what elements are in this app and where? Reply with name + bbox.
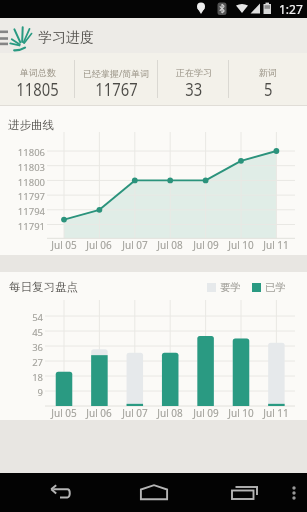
staticText: 11803 <box>17 161 45 174</box>
staticText: Jul 08 <box>155 238 185 252</box>
button[interactable]: 正在学习 <box>158 53 229 105</box>
staticText: 11767 <box>95 76 138 101</box>
staticText: Jul 08 <box>155 406 185 420</box>
staticText: Jul 05 <box>49 238 79 252</box>
staticText: 45 <box>25 326 43 339</box>
button[interactable] <box>126 473 182 512</box>
staticText: 54 <box>25 311 43 324</box>
staticText: 要学 <box>220 281 241 294</box>
staticText: 正在学习 <box>176 67 212 78</box>
staticText: Jul 09 <box>191 238 221 252</box>
staticText: Jul 07 <box>120 238 150 252</box>
staticText: 33 <box>185 76 203 101</box>
staticText: 11797 <box>17 190 45 203</box>
button[interactable]: 已经掌握/简单词 <box>75 53 158 105</box>
staticText: Jul 06 <box>84 238 114 252</box>
button[interactable]: 进步曲线 <box>0 106 307 255</box>
staticText: Jul 07 <box>120 406 150 420</box>
button[interactable]: 单词总数 <box>0 53 75 105</box>
staticText: 11794 <box>17 205 45 218</box>
staticText: 新词 <box>259 67 277 78</box>
button[interactable] <box>216 473 272 512</box>
staticText: Jul 05 <box>49 406 79 420</box>
staticText: Jul 11 <box>261 238 291 252</box>
staticText: Jul 09 <box>191 406 221 420</box>
button[interactable] <box>281 473 307 512</box>
staticText: 36 <box>25 341 43 354</box>
staticText: 已学 <box>265 281 286 294</box>
staticText: 进步曲线 <box>8 118 54 132</box>
staticText: Jul 06 <box>84 406 114 420</box>
staticText: Jul 11 <box>261 406 291 420</box>
staticText: 1:27 <box>279 1 303 17</box>
staticText: 已经掌握/简单词 <box>83 67 150 79</box>
staticText: 每日复习盘点 <box>9 280 78 294</box>
button[interactable]: 每日复习盘点 <box>0 272 307 420</box>
staticText: Jul 10 <box>226 406 256 420</box>
staticText: Jul 10 <box>226 238 256 252</box>
staticText: 单词总数 <box>20 67 56 78</box>
staticText: 11806 <box>17 146 45 159</box>
button[interactable] <box>34 473 90 512</box>
staticText: 11791 <box>17 220 45 233</box>
staticText: 27 <box>25 356 43 369</box>
staticText: 11800 <box>17 176 45 189</box>
staticText: 11805 <box>16 76 59 101</box>
staticText: 5 <box>264 76 273 101</box>
staticText: 18 <box>25 371 43 384</box>
button[interactable]: 学习进度 <box>0 18 307 53</box>
staticText: 9 <box>25 386 43 399</box>
button[interactable]: 新词 <box>229 53 307 105</box>
staticText: 学习进度 <box>38 29 94 47</box>
